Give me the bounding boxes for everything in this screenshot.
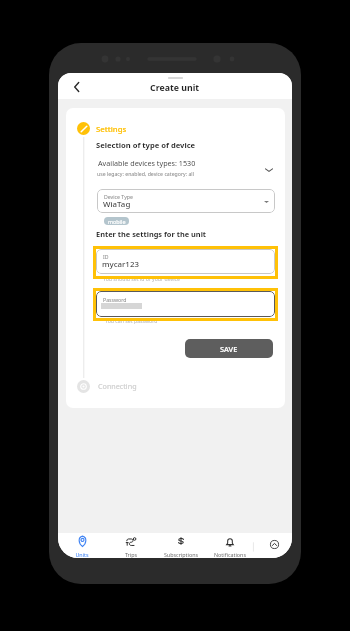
button[interactable]: Device Type <box>97 189 275 213</box>
staticText: ID <box>103 253 109 260</box>
staticText: SAVE <box>220 344 238 354</box>
button[interactable]: Trips <box>106 533 156 558</box>
button[interactable]: Notifications <box>205 533 255 558</box>
staticText: Notifications <box>205 551 255 558</box>
button[interactable]: Back <box>68 79 84 95</box>
button[interactable]: Units <box>58 533 107 558</box>
button[interactable]: SAVE <box>185 339 273 358</box>
button[interactable]: Expand device types <box>262 163 276 177</box>
button[interactable]: Password <box>96 291 275 317</box>
button[interactable]: Subscriptions <box>156 533 206 558</box>
staticText: You can set password <box>105 317 158 324</box>
staticText: Subscriptions <box>156 551 206 558</box>
staticText: Create unit <box>150 82 200 94</box>
staticText: Selection of type of device <box>96 140 196 150</box>
button[interactable]: Settings step <box>77 122 90 135</box>
staticText: Trips <box>106 551 156 558</box>
staticText: You should set id of your device <box>103 275 180 282</box>
button[interactable]: Collapse panel <box>265 535 283 553</box>
staticText: Enter the settings for the unit <box>96 229 207 239</box>
staticText: WiaTag <box>103 199 131 210</box>
staticText: Password <box>103 296 127 303</box>
staticText: mobile <box>108 218 126 225</box>
staticText: Settings <box>96 124 127 135</box>
staticText: Available devices types: 1530 <box>98 158 196 168</box>
staticText: Device Type <box>104 193 133 200</box>
staticText: mycar123 <box>102 259 139 270</box>
staticText: Connecting <box>98 381 137 391</box>
staticText: Units <box>58 551 107 558</box>
button[interactable]: ID <box>96 249 275 274</box>
button[interactable]: Connecting step <box>77 380 90 393</box>
staticText: use legacy: enabled, device category: al… <box>97 170 195 177</box>
